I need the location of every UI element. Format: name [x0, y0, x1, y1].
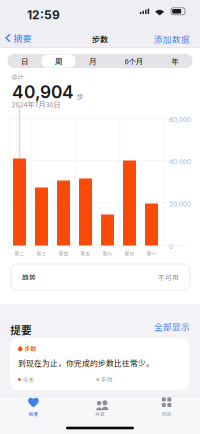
button[interactable]: 全部显示 — [154, 322, 190, 330]
staticText: 平均 — [101, 375, 113, 383]
button[interactable]: 共享 — [67, 396, 133, 418]
staticText: 添加数据 — [154, 33, 190, 45]
staticText: 步 — [76, 91, 83, 102]
button[interactable]: 日 — [7, 54, 41, 67]
button[interactable]: 年 — [157, 54, 192, 67]
button[interactable]: 周 — [41, 54, 75, 67]
staticText: 摘要 — [13, 31, 31, 44]
staticText: 共享 — [95, 410, 105, 417]
button[interactable]: 摘要 — [5, 33, 31, 42]
staticText: 周二 — [14, 250, 24, 257]
staticText: 全部显示 — [154, 320, 190, 333]
staticText: 摘要 — [28, 410, 38, 417]
button[interactable]: 趋势 — [11, 264, 190, 290]
staticText: 总计 — [11, 72, 23, 81]
button[interactable]: 浏览 — [133, 396, 200, 418]
button[interactable]: 步数 — [10, 338, 189, 390]
staticText: 60,000 — [169, 115, 191, 124]
button[interactable]: 6个月 — [109, 54, 157, 67]
staticText: 到现在为止，你完成的步数比往常少。 — [18, 357, 154, 369]
button[interactable]: 月 — [75, 54, 109, 67]
staticText: 周三 — [36, 250, 46, 257]
staticText: 步数 — [92, 33, 108, 45]
staticText: 周五 — [80, 250, 90, 257]
button[interactable]: 摘要 — [0, 396, 67, 418]
staticText: 步数 — [24, 344, 36, 353]
staticText: 40,904 — [12, 81, 74, 102]
staticText: 40,000 — [169, 158, 191, 166]
staticText: 提要 — [10, 322, 32, 337]
staticText: 趋势 — [22, 272, 36, 282]
staticText: 日 — [21, 56, 28, 66]
staticText: 0 — [169, 242, 173, 251]
staticText: 2024年7月30日 — [11, 99, 60, 109]
staticText: 周 — [55, 56, 62, 66]
staticText: 不可用 — [158, 272, 179, 282]
staticText: 周四 — [58, 250, 68, 257]
staticText: 20,000 — [169, 200, 191, 208]
staticText: 浏览 — [162, 410, 172, 417]
staticText: 今天 — [22, 375, 34, 383]
staticText: 周一 — [146, 250, 156, 257]
staticText: 6个月 — [124, 56, 142, 66]
staticText: 年 — [171, 56, 178, 66]
staticText: 12:59 — [27, 7, 60, 22]
staticText: 周日 — [124, 250, 134, 257]
staticText: 月 — [89, 56, 96, 66]
button[interactable]: 添加数据 — [154, 34, 190, 43]
staticText: 周六 — [102, 250, 112, 257]
